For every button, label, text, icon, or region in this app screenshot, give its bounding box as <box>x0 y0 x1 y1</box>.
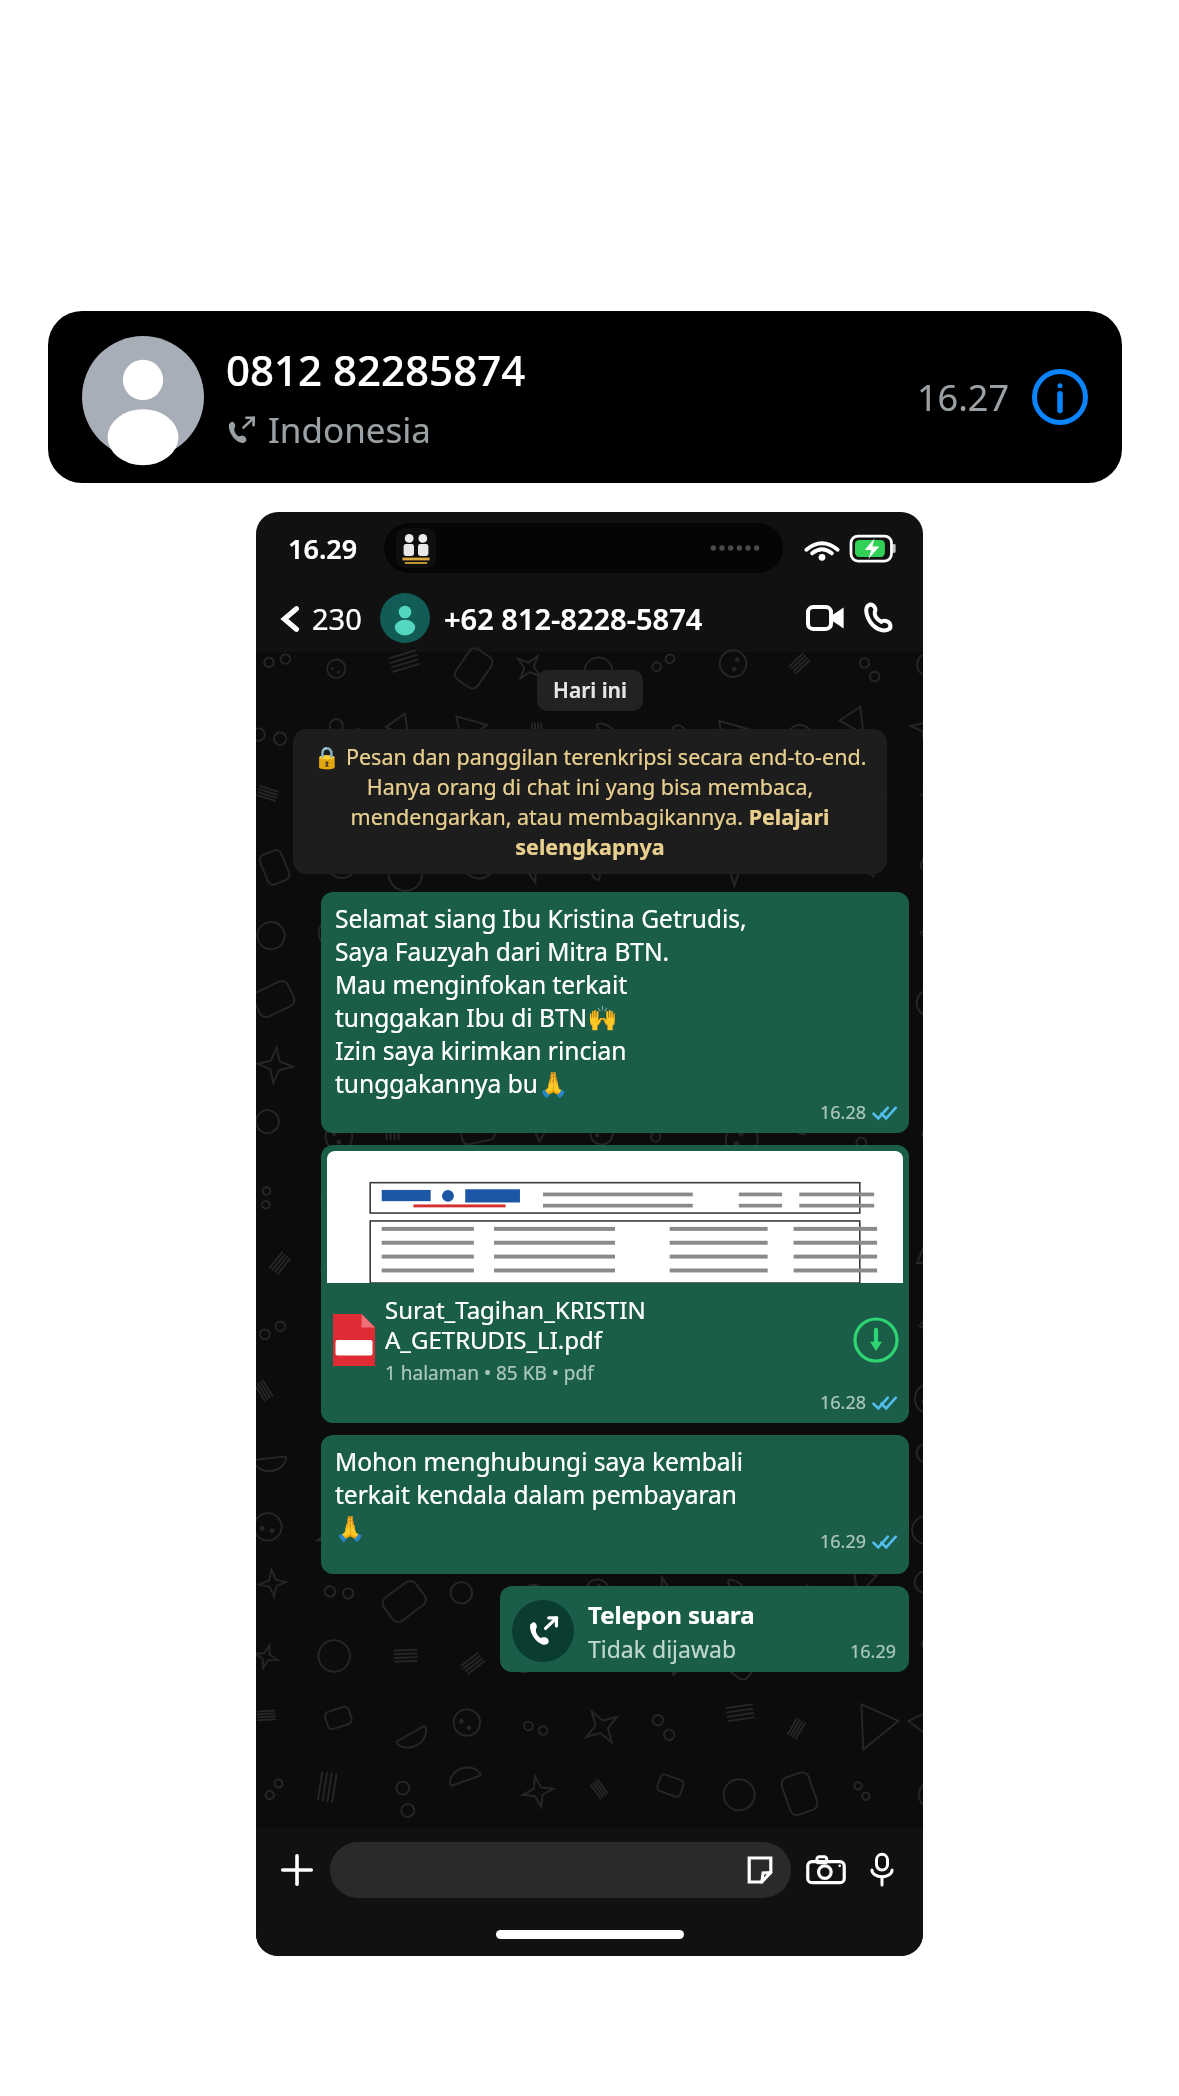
staticText: Tidak dijawab <box>588 1633 737 1664</box>
button[interactable]: Call details <box>1032 369 1088 425</box>
button[interactable]: Back, 230 unread <box>272 599 366 638</box>
staticText: 16.27 <box>917 373 1010 422</box>
button[interactable]: Surat_Tagihan_KRISTIN A_GETRUDIS_LI.pdf <box>321 1145 909 1423</box>
staticText: Hari ini <box>553 676 627 705</box>
button[interactable]: Attach <box>272 1845 322 1895</box>
staticText: 16.29 <box>820 1529 867 1554</box>
staticText: Surat_Tagihan_KRISTIN A_GETRUDIS_LI.pdf <box>385 1293 646 1356</box>
staticText: 🔒 Pesan dan panggilan terenkripsi secara… <box>309 742 871 861</box>
button[interactable]: Stickers <box>743 1853 777 1887</box>
button[interactable]: +62 812-8228-5874 <box>380 593 803 643</box>
button[interactable]: Download document <box>853 1317 899 1363</box>
button[interactable]: Stickers <box>330 1842 791 1898</box>
staticText: 0812 82285874 <box>226 341 526 398</box>
staticText: 16.29 <box>288 530 358 567</box>
staticText: 230 <box>312 599 362 638</box>
button[interactable]: Mohon menghubungi saya kembali terkait k… <box>321 1435 909 1574</box>
staticText: +62 812-8228-5874 <box>444 599 703 638</box>
button[interactable]: 0812 82285874 <box>48 311 1122 483</box>
staticText: Selamat siang Ibu Kristina Getrudis, Say… <box>335 902 747 1100</box>
staticText: 16.29 <box>850 1639 897 1664</box>
button[interactable]: Video call <box>803 595 849 641</box>
staticText: 16.28 <box>820 1390 867 1415</box>
button[interactable]: Voice message <box>857 1845 907 1895</box>
button[interactable]: 🔒 Pesan dan panggilan terenkripsi secara… <box>293 729 887 874</box>
button[interactable]: Camera <box>801 1845 851 1895</box>
staticText: Mohon menghubungi saya kembali terkait k… <box>335 1445 744 1543</box>
staticText: 1 halaman • 85 KB • pdf <box>385 1360 594 1386</box>
button[interactable]: Selamat siang Ibu Kristina Getrudis, Say… <box>321 892 909 1133</box>
button[interactable]: Telepon suara <box>500 1586 909 1672</box>
button[interactable]: Voice call <box>855 595 901 641</box>
staticText: 16.28 <box>820 1100 867 1125</box>
staticText: Indonesia <box>268 406 431 454</box>
staticText: Telepon suara <box>588 1598 755 1631</box>
